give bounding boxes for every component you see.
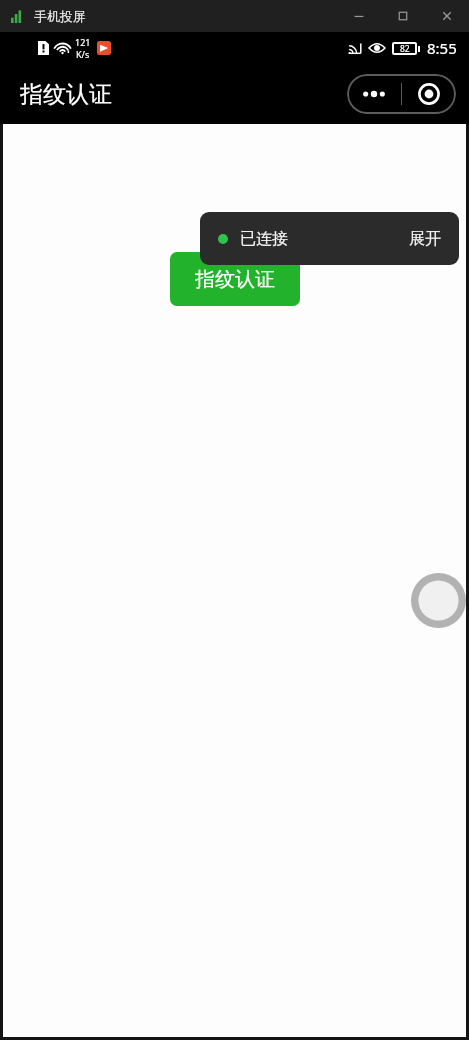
button[interactable]: Assistive touch	[411, 573, 466, 628]
button[interactable]: 指纹认证	[170, 252, 300, 306]
staticText: 8:55	[427, 38, 457, 58]
button[interactable]: Maximize	[381, 0, 425, 32]
staticText: 手机投屏	[34, 8, 86, 24]
staticText: 指纹认证	[195, 267, 275, 292]
staticText: 121	[75, 36, 91, 48]
staticText: 展开	[409, 229, 441, 249]
button[interactable]: 已连接	[200, 212, 459, 265]
button[interactable]: Close mirroring	[402, 74, 456, 114]
staticText: 82	[400, 43, 410, 55]
staticText: 指纹认证	[20, 80, 112, 109]
staticText: K/s	[76, 48, 90, 60]
button[interactable]: Close	[425, 0, 469, 32]
button[interactable]: Minimize	[337, 0, 381, 32]
staticText: 已连接	[240, 229, 288, 249]
button[interactable]: More options	[347, 74, 401, 114]
